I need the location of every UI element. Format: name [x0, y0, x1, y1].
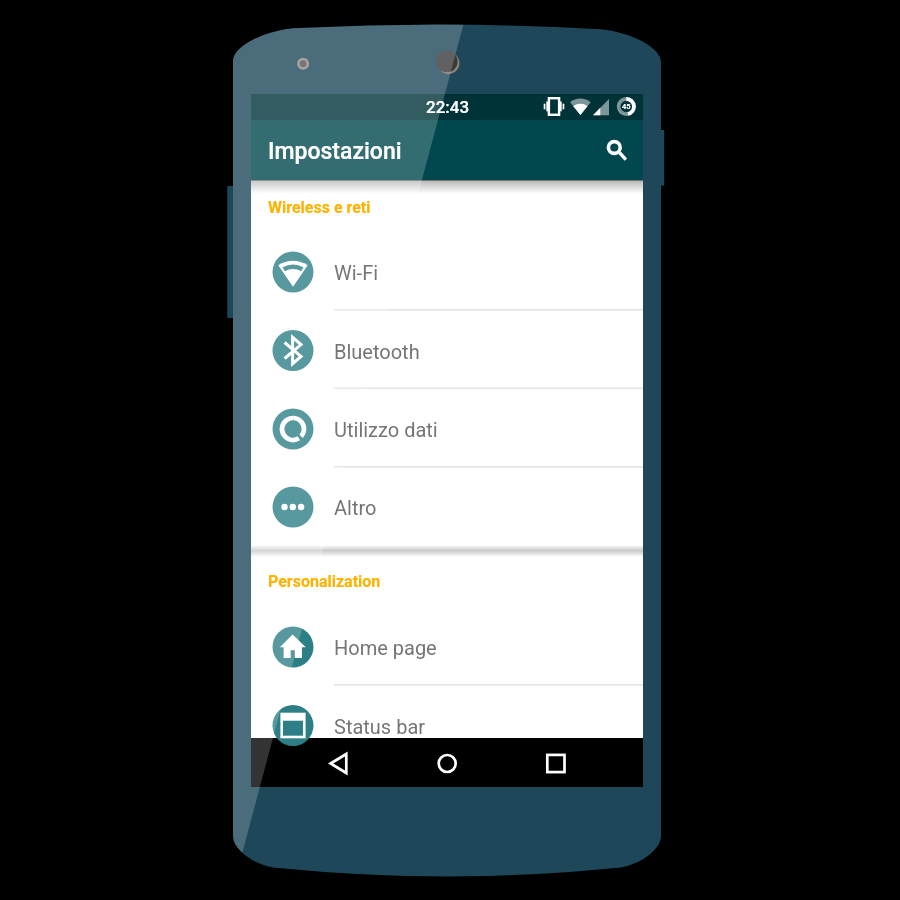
button[interactable]: Status bar — [251, 687, 643, 765]
button[interactable]: Wi-Fi — [251, 233, 643, 311]
button[interactable]: Home — [409, 738, 485, 789]
staticText: Bluetooth — [334, 340, 420, 363]
staticText: Impostazioni — [268, 138, 402, 165]
button[interactable]: Utilizzo dati — [251, 390, 643, 468]
staticText: Wireless e reti — [268, 198, 371, 217]
button[interactable]: Bluetooth — [251, 312, 643, 390]
staticText: 22:43 — [426, 97, 470, 117]
staticText: Status bar — [334, 715, 426, 738]
staticText: Personalization — [268, 572, 381, 591]
button[interactable]: Recent apps — [518, 738, 594, 789]
staticText: 45 — [622, 102, 631, 111]
button[interactable]: Back — [309, 738, 385, 789]
staticText: Utilizzo dati — [334, 418, 438, 441]
staticText: Home page — [334, 636, 437, 659]
staticText: Wi-Fi — [334, 261, 379, 284]
button[interactable]: Home page — [251, 608, 643, 686]
staticText: Altro — [334, 496, 377, 519]
button[interactable]: Search — [587, 120, 643, 179]
button[interactable]: Altro — [251, 468, 643, 546]
